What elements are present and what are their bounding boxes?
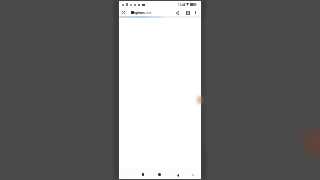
button[interactable]: Close xyxy=(120,9,127,16)
staticText: nytimes xyxy=(134,11,145,15)
staticText: nytimes xyxy=(134,11,145,15)
button[interactable]: Recent apps xyxy=(190,172,195,177)
button[interactable]: Switch tabs xyxy=(184,9,191,16)
button[interactable]: Assistant xyxy=(140,172,145,177)
button[interactable]: Back xyxy=(175,173,180,178)
button[interactable]: Home xyxy=(157,172,162,177)
staticText: 12:34 xyxy=(178,3,186,7)
button[interactable]: More options xyxy=(192,9,199,16)
staticText: .com xyxy=(145,11,152,15)
button[interactable]: Share xyxy=(174,9,181,16)
staticText: 12:34 xyxy=(178,3,186,7)
